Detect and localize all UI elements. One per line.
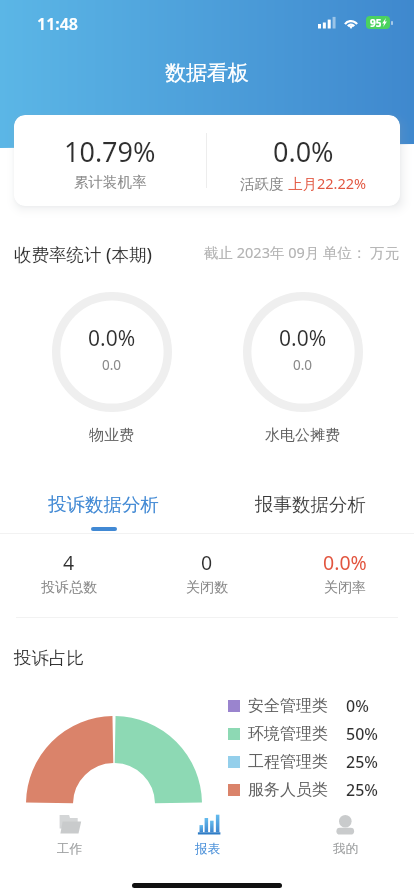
staticText: 0.0% — [279, 324, 327, 353]
button[interactable]: 我的 — [276, 808, 414, 862]
staticText: 我的 — [333, 841, 358, 857]
staticText: 工作 — [57, 841, 82, 857]
staticText: 上月22.22% — [288, 173, 367, 193]
staticText: 报事数据分析 — [255, 493, 366, 516]
button[interactable]: 投诉数据分析 — [0, 478, 207, 533]
staticText: 工程管理类 — [248, 752, 328, 772]
staticText: 环境管理类 — [248, 724, 328, 744]
staticText: 收费率统计 (本期) — [14, 242, 152, 266]
button[interactable]: 工作 — [0, 808, 138, 862]
staticText: 0.0% — [88, 324, 136, 353]
staticText: 0.0% — [273, 133, 334, 170]
staticText: 11:48 — [37, 13, 79, 35]
staticText: 水电公摊费 — [265, 426, 340, 445]
staticText: 0.0 — [293, 356, 313, 374]
staticText: 投诉总数 — [41, 579, 97, 597]
staticText: 25% — [346, 751, 378, 773]
staticText: 物业费 — [89, 426, 134, 445]
staticText: 累计装机率 — [74, 173, 147, 191]
staticText: 投诉占比 — [14, 647, 84, 669]
staticText: 安全管理类 — [248, 696, 328, 716]
button[interactable]: 报表 — [138, 808, 276, 862]
staticText: 0.0% — [323, 549, 367, 576]
staticText: 截止 2023年 09月 单位： 万元 — [204, 242, 400, 262]
staticText: 报表 — [195, 841, 220, 857]
staticText: 投诉数据分析 — [48, 493, 159, 516]
staticText: 4 — [63, 549, 75, 576]
staticText: 服务人员类 — [248, 780, 328, 800]
staticText: 0.0 — [102, 356, 122, 374]
staticText: 活跃度 — [240, 173, 288, 193]
staticText: 数据看板 — [165, 60, 249, 86]
staticText: 关闭率 — [324, 579, 366, 597]
staticText: 50% — [346, 723, 378, 745]
staticText: 10.79% — [64, 133, 156, 170]
staticText: 0 — [201, 549, 213, 576]
staticText: 0% — [346, 695, 369, 717]
staticText: 95 — [370, 16, 382, 29]
staticText: 关闭数 — [186, 579, 228, 597]
staticText: 25% — [346, 779, 378, 801]
button[interactable]: 报事数据分析 — [207, 478, 414, 533]
